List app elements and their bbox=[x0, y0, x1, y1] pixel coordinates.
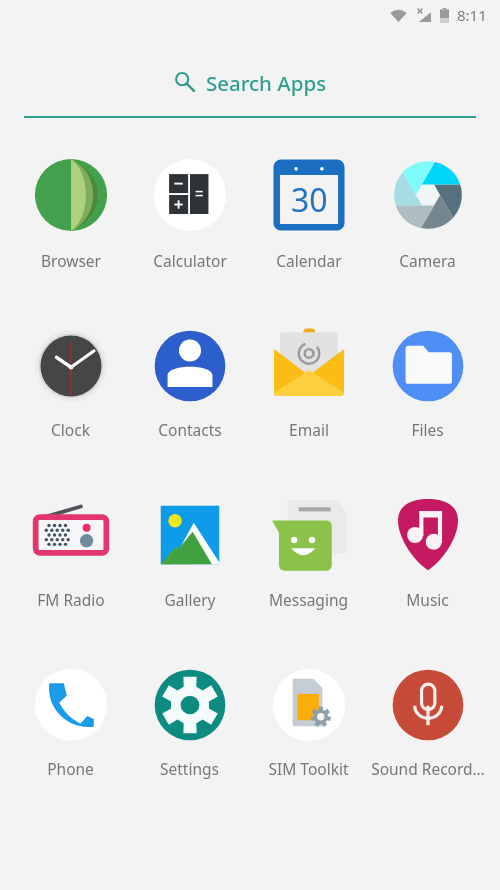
button[interactable]: Messaging bbox=[249, 489, 368, 614]
staticText: Messaging bbox=[269, 589, 348, 610]
staticText: Calendar bbox=[276, 250, 342, 271]
staticText: Email bbox=[289, 419, 329, 440]
staticText: Browser bbox=[41, 250, 101, 271]
staticText: Gallery bbox=[164, 589, 216, 610]
staticText: 30 bbox=[291, 178, 328, 222]
button[interactable]: Sound Record… bbox=[368, 659, 487, 783]
staticText: Music bbox=[406, 589, 449, 610]
button[interactable]: Contacts bbox=[130, 320, 249, 444]
button[interactable]: 30 bbox=[249, 149, 368, 275]
button[interactable]: SIM Toolkit bbox=[249, 659, 368, 783]
staticText: Clock bbox=[51, 419, 90, 440]
button[interactable]: Search Apps bbox=[0, 0, 500, 116]
staticText: Contacts bbox=[158, 419, 222, 440]
button[interactable]: Music bbox=[368, 489, 487, 614]
button[interactable]: Calculator bbox=[130, 149, 249, 275]
button[interactable]: Phone bbox=[11, 659, 130, 783]
staticText: 8:11 bbox=[457, 5, 487, 25]
button[interactable]: FM Radio bbox=[11, 489, 130, 614]
button[interactable]: Camera bbox=[368, 149, 487, 275]
staticText: Phone bbox=[47, 758, 94, 779]
staticText: Sound Record… bbox=[371, 758, 485, 779]
button[interactable]: Clock bbox=[11, 320, 130, 444]
staticText: FM Radio bbox=[37, 589, 105, 610]
button[interactable]: Gallery bbox=[130, 489, 249, 614]
button[interactable]: Email bbox=[249, 320, 368, 444]
button[interactable]: Browser bbox=[11, 149, 130, 275]
staticText: Search Apps bbox=[206, 69, 327, 97]
staticText: Calculator bbox=[153, 250, 227, 271]
staticText: Settings bbox=[160, 758, 219, 779]
staticText: SIM Toolkit bbox=[268, 758, 349, 779]
button[interactable]: Settings bbox=[130, 659, 249, 783]
staticText: Files bbox=[411, 419, 444, 440]
button[interactable]: Files bbox=[368, 320, 487, 444]
staticText: Camera bbox=[399, 250, 456, 271]
